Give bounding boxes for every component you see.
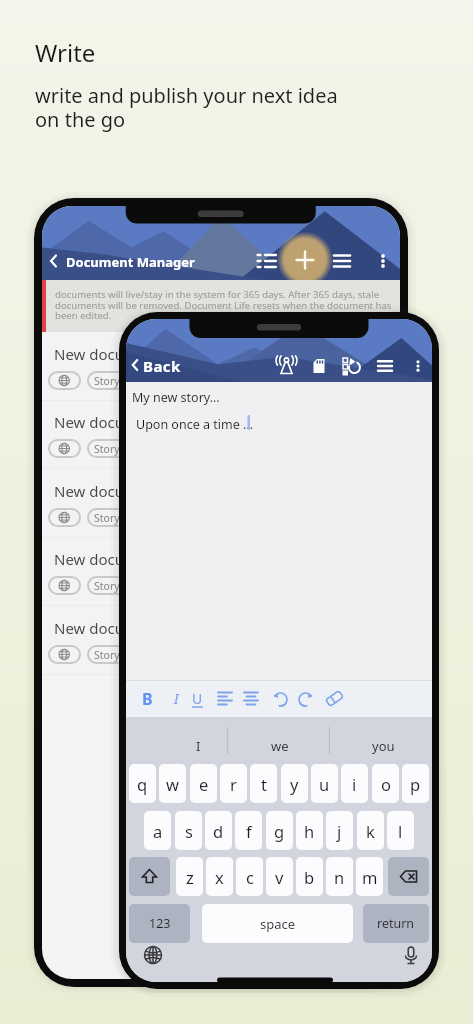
button[interactable]: [372, 248, 394, 273]
button[interactable]: New document: [42, 332, 400, 401]
button[interactable]: n: [326, 857, 353, 896]
button[interactable]: w: [159, 764, 186, 803]
button[interactable]: a: [144, 811, 171, 850]
staticText: space: [260, 915, 296, 933]
button[interactable]: f: [235, 811, 262, 850]
button[interactable]: New document: [42, 606, 400, 675]
staticText: New document: [54, 412, 162, 432]
button[interactable]: [138, 941, 168, 971]
staticText: been edited.: [55, 309, 112, 322]
button[interactable]: [296, 686, 316, 711]
button[interactable]: d: [205, 811, 232, 850]
button[interactable]: [409, 353, 427, 379]
staticText: c: [246, 866, 254, 888]
button[interactable]: I: [196, 737, 201, 755]
button[interactable]: r: [220, 764, 247, 803]
button[interactable]: j: [326, 811, 353, 850]
button[interactable]: Story: [87, 576, 127, 595]
button[interactable]: we: [271, 737, 289, 755]
button[interactable]: [254, 248, 279, 273]
staticText: Story: [94, 511, 120, 525]
button[interactable]: z: [176, 857, 203, 896]
staticText: documents will live/stay in the system f…: [55, 288, 380, 301]
button[interactable]: Story: [87, 439, 127, 458]
button[interactable]: [330, 248, 355, 273]
button[interactable]: x: [206, 857, 233, 896]
staticText: f: [246, 820, 252, 842]
staticText: l: [398, 820, 403, 842]
button[interactable]: New document: [42, 400, 400, 469]
button[interactable]: [338, 353, 362, 379]
button[interactable]: you: [372, 737, 395, 755]
staticText: Story: [94, 442, 120, 456]
button[interactable]: o: [372, 764, 399, 803]
button[interactable]: [292, 247, 318, 273]
button[interactable]: [324, 686, 346, 711]
button[interactable]: Story: [87, 508, 127, 527]
button[interactable]: u: [311, 764, 338, 803]
button[interactable]: New document: [42, 537, 400, 606]
button[interactable]: [274, 353, 299, 379]
staticText: z: [186, 866, 194, 888]
button[interactable]: [307, 353, 331, 379]
button[interactable]: [48, 439, 81, 458]
staticText: w: [166, 773, 179, 795]
button[interactable]: [216, 686, 236, 711]
button[interactable]: [271, 686, 291, 711]
button[interactable]: [396, 941, 426, 971]
button[interactable]: [48, 508, 81, 527]
staticText: on the go: [35, 106, 126, 133]
button[interactable]: 123: [129, 904, 190, 943]
button[interactable]: return: [363, 904, 429, 943]
button[interactable]: c: [236, 857, 263, 896]
button[interactable]: q: [129, 764, 156, 803]
staticText: write and publish your next idea: [35, 82, 338, 109]
button[interactable]: l: [387, 811, 414, 850]
button[interactable]: Story: [87, 371, 127, 390]
staticText: Story: [94, 374, 120, 388]
button[interactable]: [48, 371, 81, 390]
staticText: o: [381, 773, 391, 795]
staticText: m: [362, 866, 378, 888]
button[interactable]: [44, 250, 64, 272]
button[interactable]: [129, 857, 170, 896]
staticText: p: [410, 773, 421, 795]
staticText: Write: [35, 36, 96, 69]
button[interactable]: space: [202, 904, 353, 943]
button[interactable]: [128, 353, 176, 379]
button[interactable]: [242, 686, 262, 711]
staticText: Document Manager: [66, 253, 195, 271]
staticText: n: [334, 866, 345, 888]
staticText: k: [366, 820, 375, 842]
staticText: i: [352, 773, 357, 795]
staticText: e: [199, 773, 209, 795]
button[interactable]: U: [192, 689, 203, 708]
staticText: x: [215, 866, 224, 888]
button[interactable]: h: [296, 811, 323, 850]
button[interactable]: [388, 857, 429, 896]
button[interactable]: New document: [42, 469, 400, 538]
button[interactable]: m: [356, 857, 383, 896]
staticText: q: [137, 773, 148, 795]
staticText: s: [185, 820, 193, 842]
staticText: g: [274, 820, 285, 842]
staticText: Back: [143, 356, 181, 376]
button[interactable]: k: [357, 811, 384, 850]
button[interactable]: g: [266, 811, 293, 850]
button[interactable]: v: [266, 857, 293, 896]
button[interactable]: e: [190, 764, 217, 803]
button[interactable]: Story: [87, 645, 127, 664]
button[interactable]: i: [341, 764, 368, 803]
button[interactable]: I: [174, 689, 179, 708]
button[interactable]: p: [402, 764, 429, 803]
button[interactable]: b: [296, 857, 323, 896]
button[interactable]: y: [281, 764, 308, 803]
button[interactable]: [48, 576, 81, 595]
button[interactable]: B: [142, 688, 153, 710]
button[interactable]: s: [175, 811, 202, 850]
button[interactable]: [373, 353, 397, 379]
button[interactable]: [48, 645, 81, 664]
staticText: New document: [54, 344, 162, 364]
staticText: a: [153, 820, 163, 842]
button[interactable]: t: [250, 764, 277, 803]
